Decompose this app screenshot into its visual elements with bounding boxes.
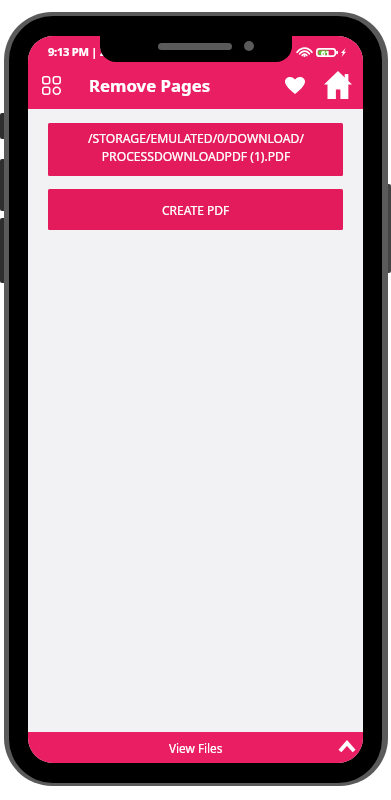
button[interactable]: CREATE PDF [48,189,343,230]
staticText: /STORAGE/EMULATED/0/DOWNLOAD/ PROCESSDOW… [88,130,304,164]
button[interactable]: View Files [28,732,363,763]
staticText: CREATE PDF [162,202,230,218]
staticText: 9:13 PM | 2 [48,44,106,59]
staticText: Remove Pages [89,74,211,97]
button[interactable]: Home [321,68,355,102]
button[interactable]: Menu [37,71,66,100]
staticText: 61 [321,48,330,57]
button[interactable]: Expand [335,735,359,759]
button[interactable]: /STORAGE/EMULATED/0/DOWNLOAD/ PROCESSDOW… [48,123,343,176]
staticText: View Files [169,740,223,756]
button[interactable]: Favorites [280,70,310,100]
